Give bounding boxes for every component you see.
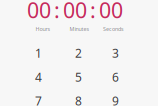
staticText: 4 xyxy=(35,69,42,85)
button[interactable]: 9 xyxy=(96,89,134,106)
button[interactable]: 6 xyxy=(96,65,134,89)
staticText: : xyxy=(90,0,96,24)
staticText: : xyxy=(54,0,60,24)
staticText: 2 xyxy=(75,45,82,61)
staticText: 7 xyxy=(35,93,42,106)
staticText: Minutes xyxy=(69,25,89,33)
button[interactable]: 7 xyxy=(19,89,57,106)
staticText: 8 xyxy=(75,93,82,106)
staticText: 9 xyxy=(112,93,119,106)
staticText: 3 xyxy=(112,45,119,61)
staticText: Seconds xyxy=(103,25,124,33)
button[interactable]: 2 xyxy=(59,41,97,65)
staticText: 5 xyxy=(75,69,82,85)
button[interactable]: 3 xyxy=(96,41,134,65)
staticText: 00 xyxy=(63,0,87,24)
staticText: 00 xyxy=(27,0,51,24)
button[interactable]: 5 xyxy=(59,65,97,89)
button[interactable]: 1 xyxy=(19,41,57,65)
staticText: Hours xyxy=(35,25,50,33)
staticText: 1 xyxy=(35,45,42,61)
staticText: 6 xyxy=(112,69,119,85)
button[interactable]: 8 xyxy=(59,89,97,106)
staticText: 00 xyxy=(99,0,123,24)
button[interactable]: 4 xyxy=(19,65,57,89)
